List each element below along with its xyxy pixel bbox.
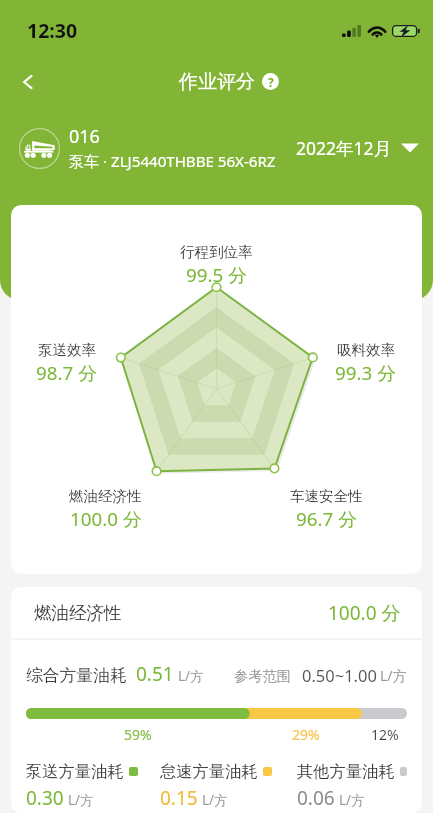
staticText: 0.15 (160, 785, 198, 811)
staticText: 泵送方量油耗 (26, 761, 124, 782)
staticText: 泵车 · ZLJ5440THBBE 56X-6RZ (69, 151, 276, 172)
staticText: 行程到位率 (180, 243, 253, 261)
staticText: L/方 (380, 666, 407, 685)
staticText: 综合方量油耗 (26, 665, 127, 686)
staticText: 29% (292, 725, 320, 744)
staticText: 燃油经济性 (69, 487, 142, 505)
staticText: 59% (124, 725, 152, 744)
staticText: 100.0 分 (328, 600, 401, 626)
staticText: 016 (69, 124, 100, 149)
staticText: L/方 (202, 791, 228, 809)
staticText: L/方 (68, 791, 94, 809)
staticText: 参考范围 (234, 667, 291, 685)
staticText: 0.06 (297, 785, 335, 811)
staticText: 2022年12月 (296, 136, 392, 160)
staticText: 100.0 分 (70, 506, 142, 532)
staticText: L/方 (178, 667, 204, 685)
staticText: 泵送效率 (38, 341, 96, 359)
staticText: 12:30 (27, 17, 78, 44)
staticText: 吸料效率 (337, 341, 395, 359)
staticText: 作业评分 (179, 70, 255, 94)
staticText: 12% (371, 725, 399, 744)
button[interactable]: 2022年12月 (292, 132, 423, 164)
staticText: 0.50~1.00 (302, 664, 377, 686)
staticText: 燃油经济性 (34, 602, 122, 624)
staticText: 98.7 分 (36, 360, 97, 386)
staticText: 其他方量油耗 (297, 761, 395, 782)
staticText: 0.51 (136, 661, 174, 687)
button[interactable]: Back (4, 58, 52, 106)
staticText: 96.7 分 (296, 506, 357, 532)
staticText: 怠速方量油耗 (160, 761, 258, 782)
staticText: 0.30 (26, 785, 64, 811)
staticText: 车速安全性 (290, 487, 363, 505)
staticText: ? (268, 74, 274, 90)
button[interactable]: Help (262, 73, 279, 90)
staticText: 99.5 分 (186, 262, 247, 288)
staticText: 99.3 分 (335, 360, 396, 386)
staticText: L/方 (339, 791, 365, 809)
